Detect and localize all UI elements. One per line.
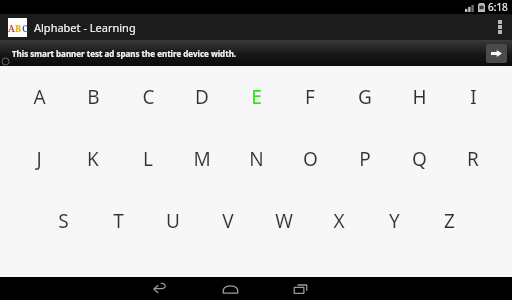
staticText: U xyxy=(166,208,180,234)
button[interactable]: Home xyxy=(217,277,243,300)
staticText: X xyxy=(333,208,345,234)
button[interactable]: I xyxy=(460,83,486,111)
button[interactable]: M xyxy=(189,145,215,173)
button[interactable]: A xyxy=(26,83,52,111)
staticText: P xyxy=(359,146,371,172)
staticText: I xyxy=(470,84,477,110)
staticText: B xyxy=(87,84,100,110)
staticText: C xyxy=(142,84,155,110)
staticText: Z xyxy=(444,208,455,234)
button[interactable]: Y xyxy=(381,207,407,235)
button[interactable]: S xyxy=(50,207,76,235)
staticText: G xyxy=(358,84,372,110)
button[interactable]: More options xyxy=(488,14,512,40)
button[interactable]: H xyxy=(406,83,432,111)
staticText: F xyxy=(305,84,315,110)
staticText: V xyxy=(222,208,234,234)
staticText: D xyxy=(195,84,209,110)
button[interactable]: App icon xyxy=(8,18,27,37)
staticText: Q xyxy=(412,146,427,172)
staticText: M xyxy=(193,146,211,172)
button[interactable]: Z xyxy=(436,207,462,235)
staticText: Y xyxy=(389,208,400,234)
staticText: W xyxy=(275,208,293,234)
staticText: N xyxy=(249,146,264,172)
staticText: R xyxy=(467,146,479,172)
button[interactable]: D xyxy=(189,83,215,111)
button[interactable]: W xyxy=(271,207,297,235)
button[interactable]: J xyxy=(26,145,52,173)
button[interactable]: B xyxy=(80,83,106,111)
staticText: E xyxy=(251,84,262,110)
button[interactable]: O xyxy=(297,145,323,173)
staticText: T xyxy=(113,208,124,234)
staticText: K xyxy=(87,146,99,172)
staticText: J xyxy=(36,146,42,172)
staticText: A xyxy=(8,22,15,34)
staticText: O xyxy=(303,146,318,172)
button[interactable]: F xyxy=(297,83,323,111)
staticText: B xyxy=(15,22,22,34)
staticText: C xyxy=(22,22,27,34)
staticText: This smart banner test ad spans the enti… xyxy=(12,48,237,59)
staticText: A xyxy=(33,84,46,110)
button[interactable]: E xyxy=(243,83,269,111)
button[interactable]: K xyxy=(80,145,106,173)
staticText: H xyxy=(412,84,427,110)
staticText: L xyxy=(143,146,153,172)
button[interactable]: Q xyxy=(406,145,432,173)
button[interactable]: V xyxy=(215,207,241,235)
staticText: Alphabet - Learning xyxy=(34,20,136,35)
button[interactable]: Back xyxy=(147,277,173,300)
button[interactable]: T xyxy=(105,207,131,235)
button[interactable]: U xyxy=(160,207,186,235)
button[interactable]: This smart banner test ad spans the enti… xyxy=(0,40,512,66)
button[interactable]: Ad information xyxy=(2,58,9,65)
button[interactable]: L xyxy=(135,145,161,173)
button[interactable]: R xyxy=(460,145,486,173)
button[interactable]: C xyxy=(135,83,161,111)
button[interactable]: Recent apps xyxy=(287,277,313,300)
button[interactable]: G xyxy=(352,83,378,111)
button[interactable]: Open ad xyxy=(486,44,507,63)
button[interactable]: N xyxy=(243,145,269,173)
button[interactable]: X xyxy=(326,207,352,235)
button[interactable]: P xyxy=(352,145,378,173)
staticText: 6:18 xyxy=(488,0,508,14)
staticText: S xyxy=(58,208,69,234)
